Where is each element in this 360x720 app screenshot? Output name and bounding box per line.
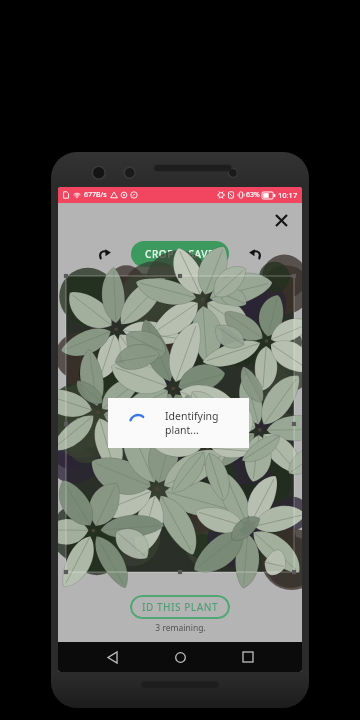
staticText: 3 remaining.	[155, 622, 206, 634]
button[interactable]: Undo	[91, 240, 119, 268]
button[interactable]: ID THIS PLANT	[130, 595, 230, 619]
button[interactable]: CROP & SAVE	[131, 241, 229, 267]
button[interactable]: Back	[100, 644, 126, 670]
staticText: 63%	[246, 190, 260, 200]
button[interactable]: Close	[270, 209, 292, 231]
staticText: 677B/s	[84, 190, 107, 200]
button[interactable]: Recent apps	[235, 644, 261, 670]
staticText: CROP & SAVE	[145, 247, 215, 261]
staticText: Identifying plant...	[165, 409, 249, 437]
button[interactable]: Redo	[241, 240, 269, 268]
button[interactable]: Home	[167, 644, 193, 670]
staticText: ID THIS PLANT	[142, 600, 219, 614]
staticText: 10:17	[278, 190, 298, 200]
